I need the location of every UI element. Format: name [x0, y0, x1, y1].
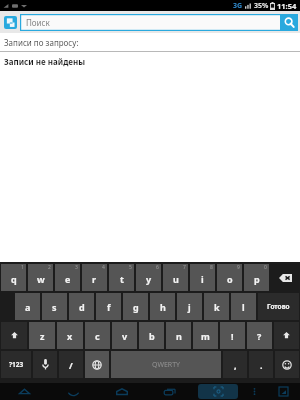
button[interactable]: 7 [163, 264, 188, 291]
button[interactable]: Screenshot [198, 384, 238, 399]
staticText: t [120, 273, 124, 285]
staticText: h [160, 301, 166, 313]
staticText: , [234, 359, 237, 371]
staticText: / [69, 359, 73, 371]
button[interactable]: z [29, 322, 55, 349]
staticText: a [25, 301, 31, 313]
staticText: f [107, 301, 111, 313]
button[interactable]: Home [98, 383, 146, 400]
button[interactable]: Emoji [275, 351, 299, 378]
button[interactable]: 2 [28, 264, 53, 291]
staticText: 3 [75, 264, 78, 271]
button[interactable]: b [139, 322, 164, 349]
staticText: 3G [233, 1, 243, 11]
button[interactable]: 5 [109, 264, 134, 291]
staticText: w [37, 273, 45, 285]
staticText: p [254, 273, 260, 285]
button[interactable]: Change language [85, 351, 109, 378]
staticText: r [92, 273, 97, 285]
button[interactable]: ? [247, 322, 272, 349]
button[interactable]: j [177, 293, 202, 320]
button[interactable]: Shift [274, 322, 299, 349]
staticText: 35% [254, 1, 269, 11]
button[interactable]: 9 [217, 264, 242, 291]
staticText: v [122, 330, 128, 342]
staticText: u [173, 273, 179, 285]
button[interactable]: 8 [190, 264, 215, 291]
button[interactable]: f [96, 293, 121, 320]
staticText: 1 [21, 264, 24, 271]
staticText: i [201, 273, 204, 285]
button[interactable]: Recent apps [146, 383, 194, 400]
staticText: m [201, 330, 210, 342]
staticText: 9 [237, 264, 240, 271]
button[interactable]: Expand [266, 383, 300, 400]
button[interactable]: App icon [2, 14, 18, 30]
staticText: l [242, 301, 245, 313]
staticText: z [40, 330, 45, 342]
button[interactable]: Voice input [33, 351, 57, 378]
staticText: ? [257, 330, 262, 342]
staticText: 8 [210, 264, 213, 271]
button[interactable]: l [231, 293, 256, 320]
staticText: 11:54 [277, 1, 297, 11]
button[interactable]: Hide keyboard [49, 383, 98, 400]
staticText: Записи по запросу: [4, 37, 79, 48]
button[interactable]: a [15, 293, 40, 320]
staticText: c [95, 330, 100, 342]
staticText: o [227, 273, 233, 285]
staticText: 2 [48, 264, 51, 271]
button[interactable]: x [57, 322, 83, 349]
button[interactable]: Поиск [20, 14, 280, 31]
staticText: 0 [264, 264, 267, 271]
button[interactable]: ?123 [1, 351, 31, 378]
button[interactable]: 3 [55, 264, 80, 291]
button[interactable]: More options [242, 383, 266, 400]
button[interactable]: / [59, 351, 83, 378]
staticText: y [146, 273, 152, 285]
button[interactable]: k [204, 293, 229, 320]
staticText: e [65, 273, 71, 285]
staticText: QWERTY [152, 360, 181, 370]
button[interactable]: n [166, 322, 191, 349]
button[interactable]: h [150, 293, 175, 320]
button[interactable]: m [193, 322, 218, 349]
button[interactable]: ! [220, 322, 245, 349]
staticText: ! [231, 330, 234, 342]
button[interactable]: QWERTY [111, 351, 221, 378]
staticText: ?123 [9, 360, 24, 369]
button[interactable]: . [249, 351, 273, 378]
staticText: 6 [156, 264, 159, 271]
staticText: s [52, 301, 57, 313]
button[interactable]: v [112, 322, 137, 349]
staticText: g [133, 301, 139, 313]
staticText: j [188, 301, 191, 313]
staticText: Записи не найдены [4, 56, 86, 67]
staticText: 4 [102, 264, 105, 271]
staticText: . [260, 359, 263, 371]
button[interactable]: 6 [136, 264, 161, 291]
button[interactable]: Shift [1, 322, 27, 349]
staticText: 7 [183, 264, 186, 271]
button[interactable]: Search [280, 14, 298, 31]
button[interactable]: c [85, 322, 110, 349]
button[interactable]: Готово [258, 293, 299, 320]
staticText: n [176, 330, 182, 342]
button[interactable]: 0 [244, 264, 269, 291]
staticText: k [214, 301, 220, 313]
button[interactable]: , [223, 351, 247, 378]
staticText: 5 [129, 264, 132, 271]
button[interactable]: Back [0, 383, 49, 400]
staticText: d [79, 301, 85, 313]
button[interactable]: Backspace [271, 264, 299, 291]
button[interactable]: g [123, 293, 148, 320]
staticText: q [11, 273, 17, 285]
staticText: Готово [267, 302, 290, 311]
staticText: Поиск [26, 17, 50, 28]
button[interactable]: 4 [82, 264, 107, 291]
button[interactable]: 1 [1, 264, 26, 291]
button[interactable]: s [42, 293, 67, 320]
staticText: x [67, 330, 73, 342]
button[interactable]: d [69, 293, 94, 320]
staticText: b [149, 330, 155, 342]
